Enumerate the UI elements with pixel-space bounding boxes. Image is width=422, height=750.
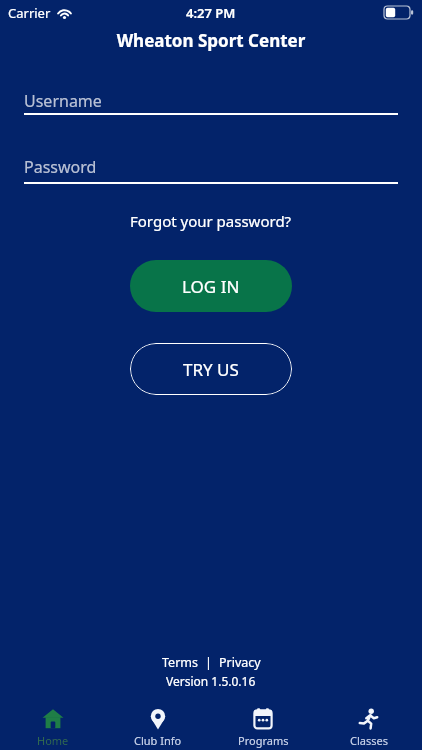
staticText: LOG IN xyxy=(182,275,240,298)
button[interactable]: Username xyxy=(24,90,398,115)
staticText: 4:27 PM xyxy=(186,4,236,22)
staticText: Club Info xyxy=(134,733,182,748)
staticText: Terms xyxy=(162,654,198,671)
staticText: Classes xyxy=(350,733,388,748)
staticText: Username xyxy=(24,90,102,112)
button[interactable]: Forgot your password? xyxy=(130,211,292,231)
staticText: Wheaton Sport Center xyxy=(0,29,422,52)
button[interactable]: Terms xyxy=(162,654,198,671)
staticText: Home xyxy=(37,733,69,748)
staticText: Version 1.5.0.16 xyxy=(166,673,256,689)
button[interactable]: Home xyxy=(0,700,105,748)
button[interactable]: Password xyxy=(24,156,398,184)
staticText: Password xyxy=(24,156,97,178)
button[interactable]: LOG IN xyxy=(130,260,292,312)
staticText: TRY US xyxy=(183,358,239,381)
staticText: Forgot your password? xyxy=(130,211,292,231)
staticText: Privacy xyxy=(219,654,261,671)
button[interactable]: TRY US xyxy=(130,343,292,395)
button[interactable]: Privacy xyxy=(219,654,261,671)
button[interactable]: Club Info xyxy=(105,700,210,748)
staticText: Programs xyxy=(238,733,289,748)
staticText: | xyxy=(205,654,212,671)
button[interactable]: Programs xyxy=(210,700,316,748)
staticText: Carrier xyxy=(8,4,51,22)
button[interactable]: Classes xyxy=(316,700,422,748)
